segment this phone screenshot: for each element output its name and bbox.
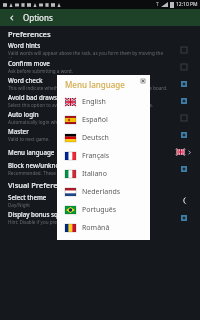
- button[interactable]: Menu language: [0, 143, 200, 160]
- staticText: Deutsch: [82, 133, 109, 143]
- staticText: Select this option to avoid drawing too …: [8, 102, 154, 108]
- button[interactable]: Word check: [173, 75, 195, 92]
- button[interactable]: Back: [6, 12, 18, 24]
- staticText: Nederlands: [82, 187, 121, 197]
- staticText: Automatically login when starting the ap…: [8, 119, 100, 125]
- staticText: Français: [82, 151, 110, 161]
- staticText: Block new/unknown players: [8, 161, 92, 169]
- button[interactable]: Avoid bad draws: [0, 92, 200, 109]
- button[interactable]: Block new/unknown players: [173, 160, 195, 177]
- staticText: T: [156, 1, 159, 8]
- button[interactable]: Select theme: [0, 192, 200, 209]
- staticText: Word check: [8, 76, 43, 84]
- staticText: Español: [82, 115, 108, 125]
- staticText: Word hints: [8, 41, 41, 49]
- staticText: Valid words will appear above the rack, …: [8, 50, 169, 58]
- staticText: Display bonus squares: [8, 210, 75, 218]
- staticText: English: [82, 97, 106, 107]
- staticText: Hint: Disable if you prefer a cleaner bo…: [8, 219, 100, 225]
- button[interactable]: Español: [57, 111, 150, 129]
- button[interactable]: Auto login: [0, 109, 200, 126]
- button[interactable]: Display bonus squares: [0, 209, 200, 226]
- staticText: Valid to next game.: [8, 136, 50, 142]
- staticText: Menu language: [65, 79, 125, 90]
- button[interactable]: Select theme: [173, 192, 195, 209]
- button[interactable]: Nederlands: [57, 183, 150, 201]
- staticText: Preferences: [8, 29, 51, 39]
- button[interactable]: Français: [57, 147, 150, 165]
- button[interactable]: Master: [173, 126, 195, 143]
- staticText: 12:10 PM: [176, 1, 198, 8]
- staticText: Română: [82, 223, 110, 233]
- staticText: This will indicate whether a word is val…: [8, 85, 168, 91]
- staticText: Day/Night: [8, 202, 30, 208]
- staticText: Options: [23, 12, 53, 23]
- button[interactable]: Italiano: [57, 165, 150, 183]
- button[interactable]: Back: [0, 9, 200, 26]
- button[interactable]: Word hints: [0, 41, 200, 58]
- staticText: Master: [8, 127, 29, 135]
- staticText: Português: [82, 205, 117, 215]
- staticText: Menu language: [8, 148, 55, 156]
- button[interactable]: Display bonus squares: [173, 209, 195, 226]
- staticText: Confirm move: [8, 59, 50, 67]
- button[interactable]: Deutsch: [57, 129, 150, 147]
- staticText: Ask before submitting a word.: [8, 68, 73, 74]
- button[interactable]: Português: [57, 201, 150, 219]
- button[interactable]: Menu language: [173, 143, 195, 160]
- button[interactable]: Auto login: [173, 109, 195, 126]
- button[interactable]: English: [57, 93, 150, 111]
- button[interactable]: Avoid bad draws: [173, 92, 195, 109]
- staticText: Italiano: [82, 169, 107, 179]
- button[interactable]: Close: [140, 78, 146, 84]
- button[interactable]: Master: [0, 126, 200, 143]
- staticText: Recommended. These players often abandon…: [8, 170, 123, 176]
- staticText: Auto login: [8, 110, 39, 118]
- staticText: Avoid bad draws: [8, 93, 57, 101]
- button[interactable]: Confirm move: [0, 58, 200, 75]
- button[interactable]: Word check: [0, 75, 200, 92]
- button[interactable]: Confirm move: [173, 58, 195, 75]
- button[interactable]: Word hints: [173, 41, 195, 58]
- button[interactable]: Block new/unknown players: [0, 160, 200, 177]
- button[interactable]: Română: [57, 219, 150, 237]
- staticText: Visual Preferences: [8, 180, 74, 190]
- staticText: Select theme: [8, 193, 47, 201]
